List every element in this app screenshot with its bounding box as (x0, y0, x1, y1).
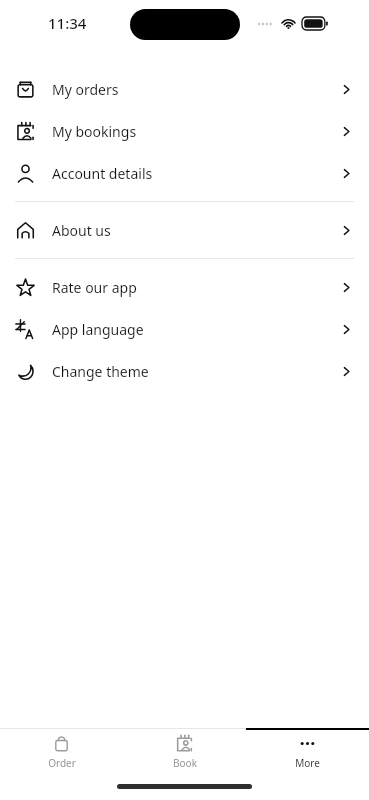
button[interactable]: Rate our app (0, 266, 369, 308)
staticText: My bookings (52, 122, 137, 141)
button[interactable]: Account details (0, 152, 369, 194)
staticText: Order (48, 756, 76, 770)
button[interactable]: Order (0, 728, 123, 778)
button[interactable]: About us (0, 209, 369, 251)
staticText: 11:34 (48, 13, 87, 33)
button[interactable]: My bookings (0, 110, 369, 152)
button[interactable]: Book (123, 728, 246, 778)
staticText: Change theme (52, 362, 149, 381)
staticText: App language (52, 320, 144, 339)
staticText: About us (52, 221, 111, 240)
staticText: More (295, 756, 320, 770)
button[interactable]: More (246, 728, 369, 778)
staticText: Book (173, 756, 197, 770)
button[interactable]: My orders (0, 68, 369, 110)
staticText: My orders (52, 80, 119, 99)
button[interactable]: App language (0, 308, 369, 350)
staticText: Rate our app (52, 278, 137, 297)
button[interactable]: Change theme (0, 350, 369, 392)
staticText: Account details (52, 164, 153, 183)
